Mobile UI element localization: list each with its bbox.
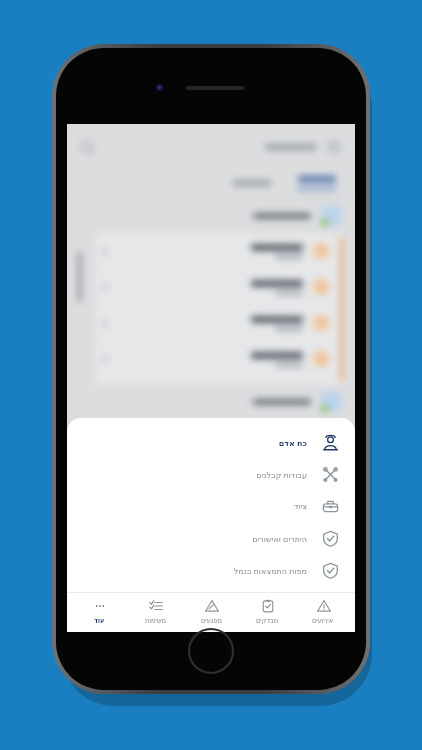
staticText: מפות התמצאות בנמל [233, 565, 307, 576]
staticText: עבודות קבלנים [256, 469, 307, 480]
button[interactable]: עוד [71, 592, 127, 632]
button[interactable]: מבדקים [239, 592, 295, 632]
staticText: מפגעים [201, 617, 222, 625]
staticText: היתרים ואישורים [252, 533, 307, 544]
button[interactable]: עבודות קבלנים [67, 458, 355, 490]
staticText: משימות [145, 617, 166, 625]
staticText: עוד [94, 617, 105, 625]
button[interactable]: מפגעים [183, 592, 239, 632]
button[interactable]: אירועים [295, 592, 351, 632]
button[interactable]: היתרים ואישורים [67, 522, 355, 554]
button[interactable]: כח אדם [67, 426, 355, 458]
button[interactable]: ציוד [67, 490, 355, 522]
button[interactable]: משימות [127, 592, 183, 632]
staticText: אירועים [312, 617, 334, 625]
staticText: ציוד [293, 502, 307, 511]
staticText: כח אדם [278, 437, 307, 448]
staticText: מבדקים [256, 617, 279, 625]
button[interactable]: מפות התמצאות בנמל [67, 554, 355, 586]
